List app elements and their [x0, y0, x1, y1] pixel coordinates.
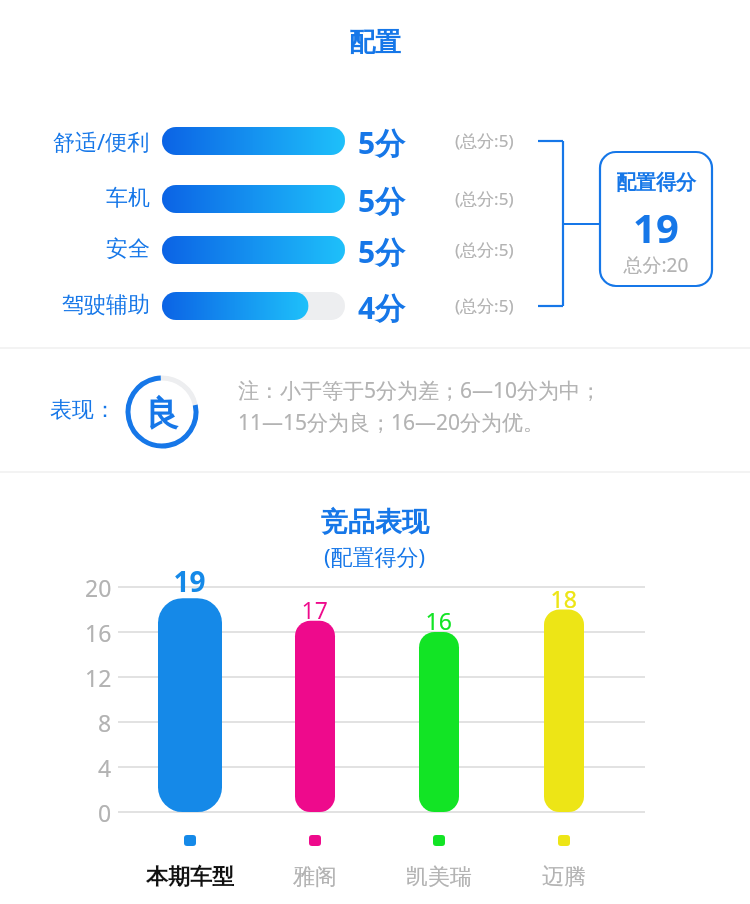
- button[interactable]: 配置评分图表: [0, 0, 750, 904]
